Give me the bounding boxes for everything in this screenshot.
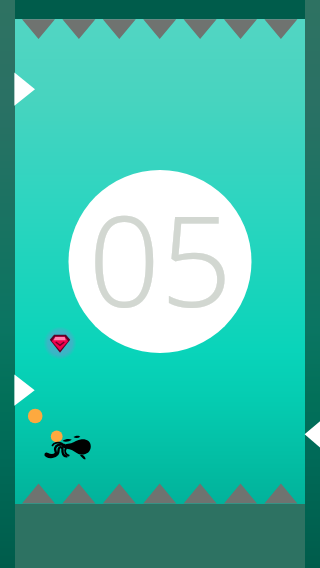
- button[interactable]: Game board: [0, 0, 320, 568]
